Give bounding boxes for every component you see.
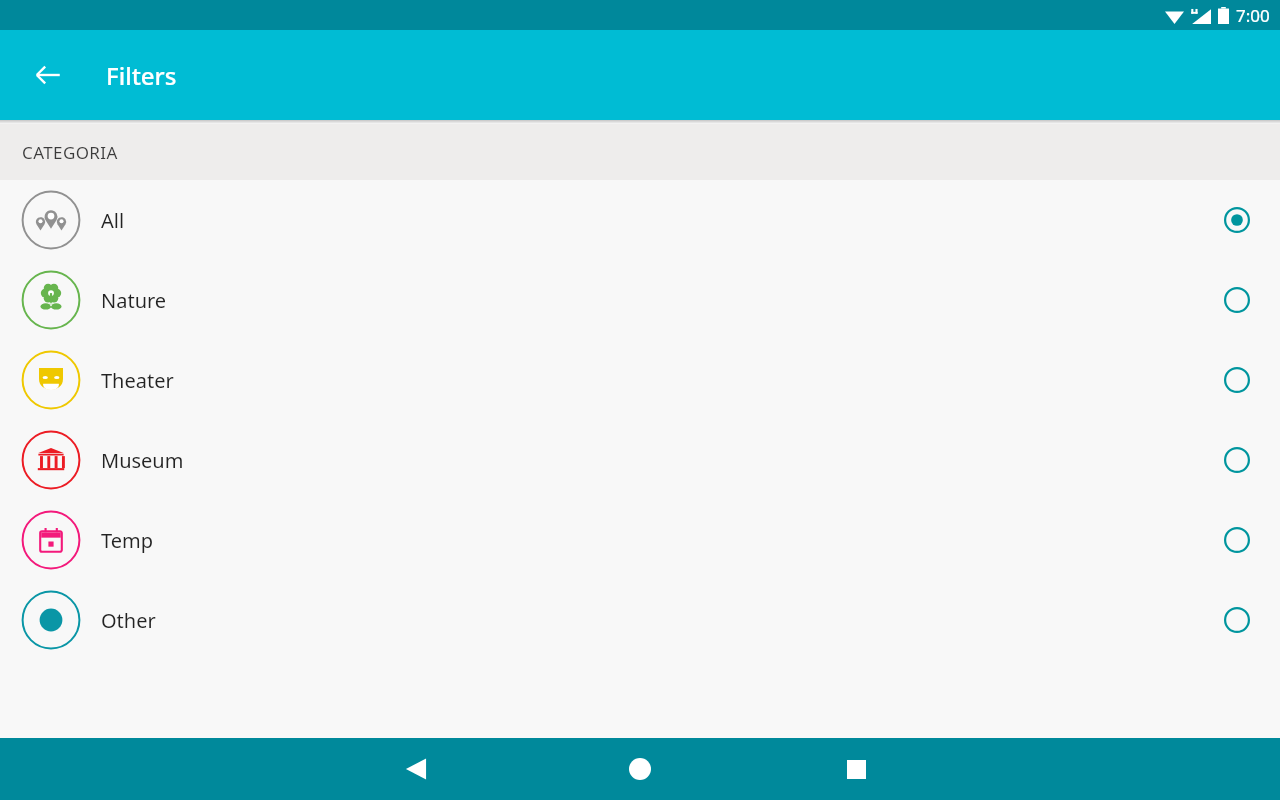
button[interactable]: Theater bbox=[0, 340, 1280, 420]
staticText: 7:00 bbox=[1236, 4, 1270, 27]
button[interactable]: Museum bbox=[0, 420, 1280, 500]
button[interactable]: Other bbox=[0, 580, 1280, 660]
button[interactable]: Back bbox=[390, 743, 442, 795]
button[interactable]: Home bbox=[614, 743, 666, 795]
button[interactable]: Temp bbox=[0, 500, 1280, 580]
staticText: Temp bbox=[101, 527, 153, 554]
staticText: Filters bbox=[106, 59, 177, 92]
staticText: Theater bbox=[101, 367, 174, 394]
staticText: All bbox=[101, 207, 125, 234]
button[interactable]: Back bbox=[26, 53, 70, 97]
staticText: CATEGORIA bbox=[22, 141, 118, 164]
button[interactable]: All bbox=[0, 180, 1280, 260]
staticText: Other bbox=[101, 607, 156, 634]
staticText: Nature bbox=[101, 287, 167, 314]
staticText: Museum bbox=[101, 447, 184, 474]
button[interactable]: Recents bbox=[830, 743, 882, 795]
button[interactable]: Nature bbox=[0, 260, 1280, 340]
